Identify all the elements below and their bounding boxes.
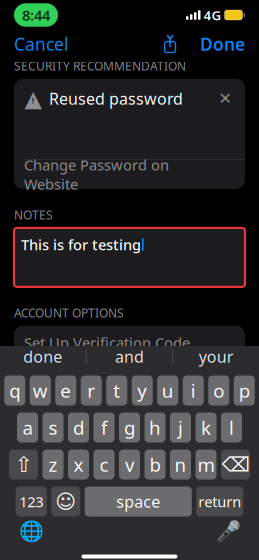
- button[interactable]: space: [85, 486, 192, 516]
- button[interactable]: i: [183, 375, 204, 405]
- button[interactable]: Share: [154, 30, 186, 58]
- staticText: e: [60, 378, 71, 403]
- button[interactable]: v: [119, 449, 140, 479]
- button[interactable]: and: [86, 344, 172, 368]
- staticText: NOTES: [14, 207, 53, 223]
- staticText: Change Password on Website: [24, 155, 169, 194]
- staticText: l: [229, 415, 234, 440]
- button[interactable]: f: [93, 412, 114, 442]
- staticText: This is for testing: [21, 235, 141, 254]
- staticText: r: [87, 378, 95, 403]
- staticText: space: [116, 491, 160, 512]
- button[interactable]: l: [221, 412, 242, 442]
- staticText: Set Up Verification Code: [24, 333, 190, 352]
- staticText: ACCOUNT OPTIONS: [14, 305, 124, 321]
- button[interactable]: x: [68, 449, 89, 479]
- button[interactable]: y: [132, 375, 153, 405]
- staticText: o: [213, 378, 224, 403]
- staticText: b: [149, 452, 160, 477]
- button[interactable]: done: [0, 344, 86, 368]
- button[interactable]: Shift: [9, 449, 38, 479]
- staticText: h: [149, 415, 161, 440]
- button[interactable]: Change Password on Website: [14, 160, 245, 189]
- staticText: ⇧: [14, 452, 32, 477]
- staticText: f: [101, 415, 107, 440]
- staticText: v: [125, 452, 134, 477]
- staticText: return: [198, 492, 241, 511]
- staticText: 4G: [203, 6, 221, 24]
- button[interactable]: return: [196, 486, 243, 516]
- button[interactable]: w: [30, 375, 51, 405]
- button[interactable]: your: [173, 344, 259, 368]
- button[interactable]: Next keyboard: [18, 518, 44, 544]
- button[interactable]: h: [144, 412, 165, 442]
- staticText: ⌫: [221, 453, 249, 476]
- staticText: d: [73, 415, 84, 440]
- button[interactable]: s: [42, 412, 63, 442]
- staticText: Reused password: [49, 88, 183, 109]
- staticText: Cancel: [14, 32, 68, 55]
- button[interactable]: 123: [16, 486, 47, 516]
- button[interactable]: m: [195, 449, 216, 479]
- staticText: 🎤: [215, 520, 240, 543]
- button[interactable]: k: [195, 412, 216, 442]
- staticText: w: [33, 378, 48, 403]
- staticText: u: [162, 378, 174, 403]
- staticText: p: [239, 378, 250, 403]
- button[interactable]: Dismiss: [215, 89, 235, 109]
- staticText: SECURITY RECOMMENDATION: [14, 58, 186, 74]
- button[interactable]: Dictation: [215, 518, 241, 544]
- button[interactable]: r: [81, 375, 102, 405]
- button[interactable]: o: [208, 375, 229, 405]
- staticText: g: [124, 415, 135, 440]
- button[interactable]: Cancel: [0, 25, 82, 62]
- button[interactable]: e: [55, 375, 76, 405]
- button[interactable]: z: [42, 449, 63, 479]
- staticText: done: [23, 346, 62, 367]
- staticText: a: [22, 415, 32, 440]
- staticText: i: [191, 378, 196, 403]
- staticText: 123: [19, 492, 43, 511]
- button[interactable]: a: [17, 412, 38, 442]
- button[interactable]: Delete: [221, 449, 250, 479]
- button[interactable]: p: [234, 375, 255, 405]
- button[interactable]: Done: [186, 25, 259, 62]
- staticText: t: [113, 378, 120, 403]
- staticText: n: [174, 452, 186, 477]
- staticText: ▲: [24, 86, 41, 111]
- button[interactable]: t: [106, 375, 127, 405]
- staticText: ✕: [218, 89, 231, 108]
- staticText: 🌐: [18, 520, 43, 543]
- staticText: x: [73, 452, 83, 477]
- button[interactable]: j: [170, 412, 191, 442]
- button[interactable]: g: [119, 412, 140, 442]
- button[interactable]: n: [170, 449, 191, 479]
- staticText: y: [137, 378, 147, 403]
- button[interactable]: b: [144, 449, 165, 479]
- button[interactable]: Emoji: [51, 486, 80, 516]
- button[interactable]: c: [93, 449, 114, 479]
- staticText: c: [99, 452, 108, 477]
- staticText: 8:44: [22, 5, 50, 25]
- staticText: k: [201, 415, 211, 440]
- staticText: q: [9, 378, 20, 403]
- staticText: ☺: [55, 490, 76, 513]
- staticText: and: [115, 346, 144, 367]
- button[interactable]: d: [68, 412, 89, 442]
- staticText: z: [48, 452, 57, 477]
- staticText: j: [178, 415, 183, 440]
- button[interactable]: q: [4, 375, 25, 405]
- staticText: Done: [200, 32, 245, 55]
- staticText: your: [199, 346, 234, 367]
- button[interactable]: u: [157, 375, 178, 405]
- staticText: m: [197, 452, 214, 477]
- staticText: s: [48, 415, 57, 440]
